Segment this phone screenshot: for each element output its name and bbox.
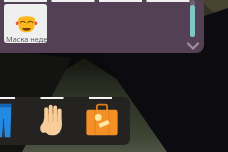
button[interactable]: Маска недели	[4, 4, 47, 43]
staticText: Маска недели	[6, 34, 47, 43]
button[interactable]: Clothing	[0, 97, 28, 145]
button[interactable]: Collapse	[185, 38, 201, 53]
button[interactable]: Travel	[77, 97, 126, 145]
button[interactable]: People	[28, 97, 77, 145]
